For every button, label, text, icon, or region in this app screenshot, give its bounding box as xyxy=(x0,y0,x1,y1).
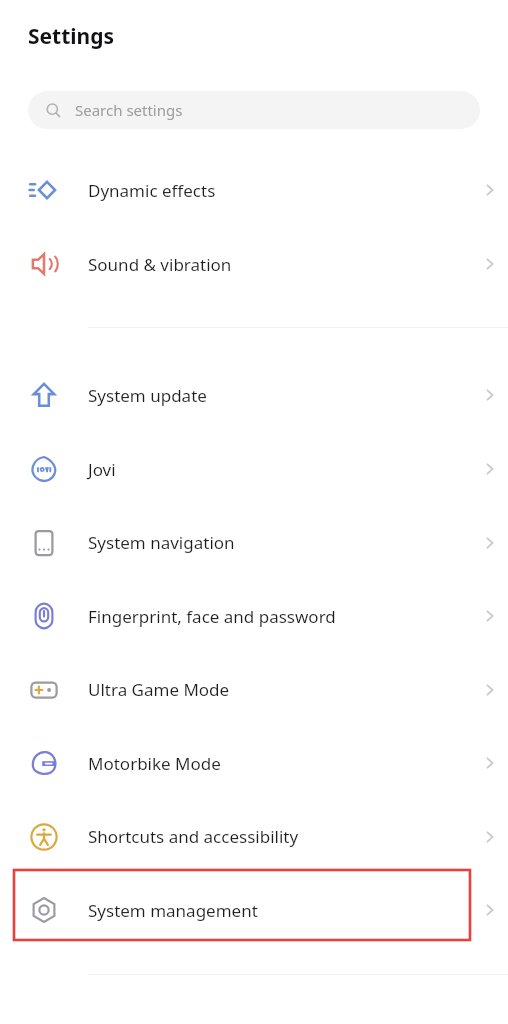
button[interactable]: System update xyxy=(0,358,508,432)
button[interactable]: System management xyxy=(0,873,508,947)
staticText: System update xyxy=(88,384,472,407)
staticText: Sound & vibration xyxy=(88,253,472,276)
button[interactable]: Search settings xyxy=(28,91,480,129)
button[interactable]: Dynamic effects xyxy=(0,153,508,227)
staticText: System navigation xyxy=(88,531,472,554)
button[interactable]: System navigation xyxy=(0,506,508,579)
staticText: Ultra Game Mode xyxy=(88,678,472,701)
button[interactable]: Ultra Game Mode xyxy=(0,653,508,726)
button[interactable]: Sound & vibration xyxy=(0,227,508,301)
staticText: Settings xyxy=(28,22,115,51)
button[interactable]: Jovi xyxy=(0,432,508,506)
staticText: Dynamic effects xyxy=(88,179,472,202)
staticText: Jovi xyxy=(88,458,472,481)
staticText: Shortcuts and accessibility xyxy=(88,825,472,848)
staticText: Search settings xyxy=(75,100,183,120)
staticText: Fingerprint, face and password xyxy=(88,605,472,628)
button[interactable]: Shortcuts and accessibility xyxy=(0,800,508,873)
staticText: Motorbike Mode xyxy=(88,752,472,775)
button[interactable]: Motorbike Mode xyxy=(0,726,508,800)
button[interactable]: Fingerprint, face and password xyxy=(0,579,508,653)
staticText: System management xyxy=(88,899,472,922)
